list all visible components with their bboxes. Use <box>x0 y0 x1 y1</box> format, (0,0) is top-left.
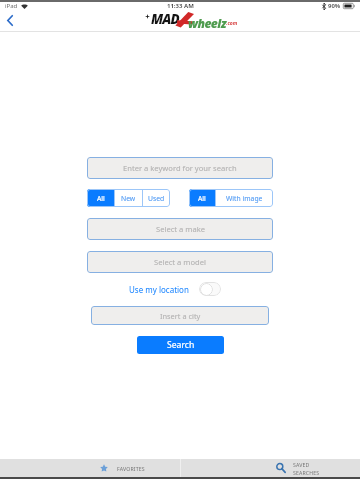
button[interactable]: Back <box>1 11 19 29</box>
staticText: iPad <box>5 2 18 10</box>
button[interactable]: Enter a keyword for your search <box>87 157 273 179</box>
staticText: Insert a city <box>160 311 201 321</box>
button[interactable]: Use my location toggle <box>199 282 221 296</box>
staticText: Search <box>167 339 195 351</box>
staticText: MAD <box>151 10 179 28</box>
staticText: FAVORITES <box>117 465 145 472</box>
button[interactable]: New <box>115 189 142 207</box>
staticText: All <box>198 194 206 203</box>
button[interactable]: Insert a city <box>91 306 269 325</box>
staticText: 90% <box>328 2 341 10</box>
button[interactable]: With image <box>216 189 273 207</box>
staticText: With image <box>226 194 263 203</box>
staticText: Use my location <box>129 284 189 295</box>
staticText: Used <box>148 194 165 203</box>
button[interactable]: FAVORITES <box>100 459 156 477</box>
staticText: 11:33 AM <box>167 2 194 10</box>
staticText: Select a model <box>154 257 206 267</box>
staticText: wheelz <box>188 15 226 32</box>
staticText: All <box>97 194 105 203</box>
button[interactable]: All <box>189 189 215 207</box>
button[interactable]: Use my location <box>129 281 221 297</box>
button[interactable]: Select a make <box>87 218 273 240</box>
staticText: .com <box>226 20 238 27</box>
button[interactable]: SAVED <box>276 459 330 477</box>
staticText: New <box>121 194 136 203</box>
button[interactable]: All <box>87 189 114 207</box>
staticText: Enter a keyword for your search <box>123 163 237 173</box>
button[interactable]: Used <box>143 189 170 207</box>
staticText: Select a make <box>156 224 205 234</box>
button[interactable]: Select a model <box>87 251 273 273</box>
staticText: SAVED <box>293 461 310 468</box>
staticText: SEARCHES <box>293 469 320 476</box>
button[interactable]: Search <box>137 336 224 354</box>
